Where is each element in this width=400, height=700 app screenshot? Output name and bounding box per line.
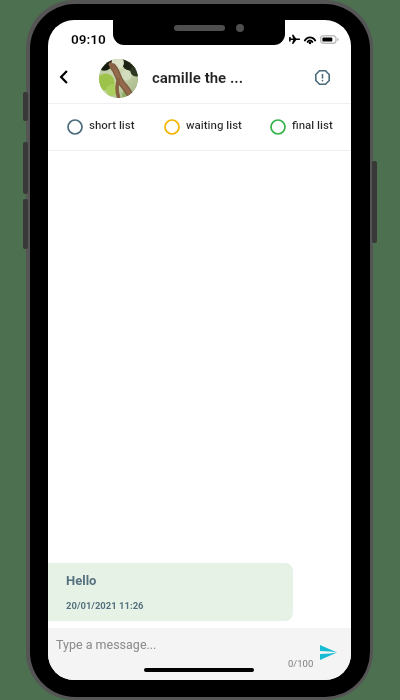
button[interactable]: Profile photo [99, 59, 138, 98]
button[interactable]: final list [270, 111, 311, 141]
button[interactable]: Back [48, 61, 80, 93]
button[interactable]: waiting list [164, 111, 220, 141]
staticText: short list [89, 118, 135, 131]
staticText: 20/01/2021 11:26 [66, 600, 144, 611]
button[interactable]: short list [67, 111, 113, 141]
button[interactable]: Send [316, 640, 340, 664]
button[interactable]: Report [306, 61, 338, 93]
staticText: final list [292, 118, 333, 131]
staticText: Hello [66, 573, 97, 588]
button[interactable]: Type a message... [56, 637, 157, 652]
staticText: 09:10 [71, 31, 106, 47]
button[interactable]: camille the ... [152, 69, 244, 87]
staticText: waiting list [186, 118, 242, 131]
button[interactable]: Hello [48, 563, 293, 621]
staticText: 0/100 [288, 658, 314, 669]
